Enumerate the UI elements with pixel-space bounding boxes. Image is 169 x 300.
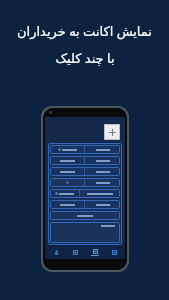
button[interactable] [50, 145, 120, 154]
button[interactable] [50, 211, 120, 220]
button[interactable] [50, 167, 120, 176]
button[interactable]: Profile [48, 245, 64, 259]
button[interactable]: Orders [67, 245, 83, 259]
staticText: نمایش اکانت به خریداران [17, 22, 152, 40]
staticText: با چند کلیک [55, 49, 115, 67]
button[interactable]: Store [106, 245, 122, 259]
button[interactable] [50, 200, 120, 209]
button[interactable] [50, 222, 120, 243]
button[interactable] [50, 156, 120, 165]
button[interactable] [50, 178, 120, 187]
button[interactable] [50, 189, 120, 198]
button[interactable]: Add account [104, 124, 120, 140]
button[interactable]: Accounts [87, 245, 103, 259]
